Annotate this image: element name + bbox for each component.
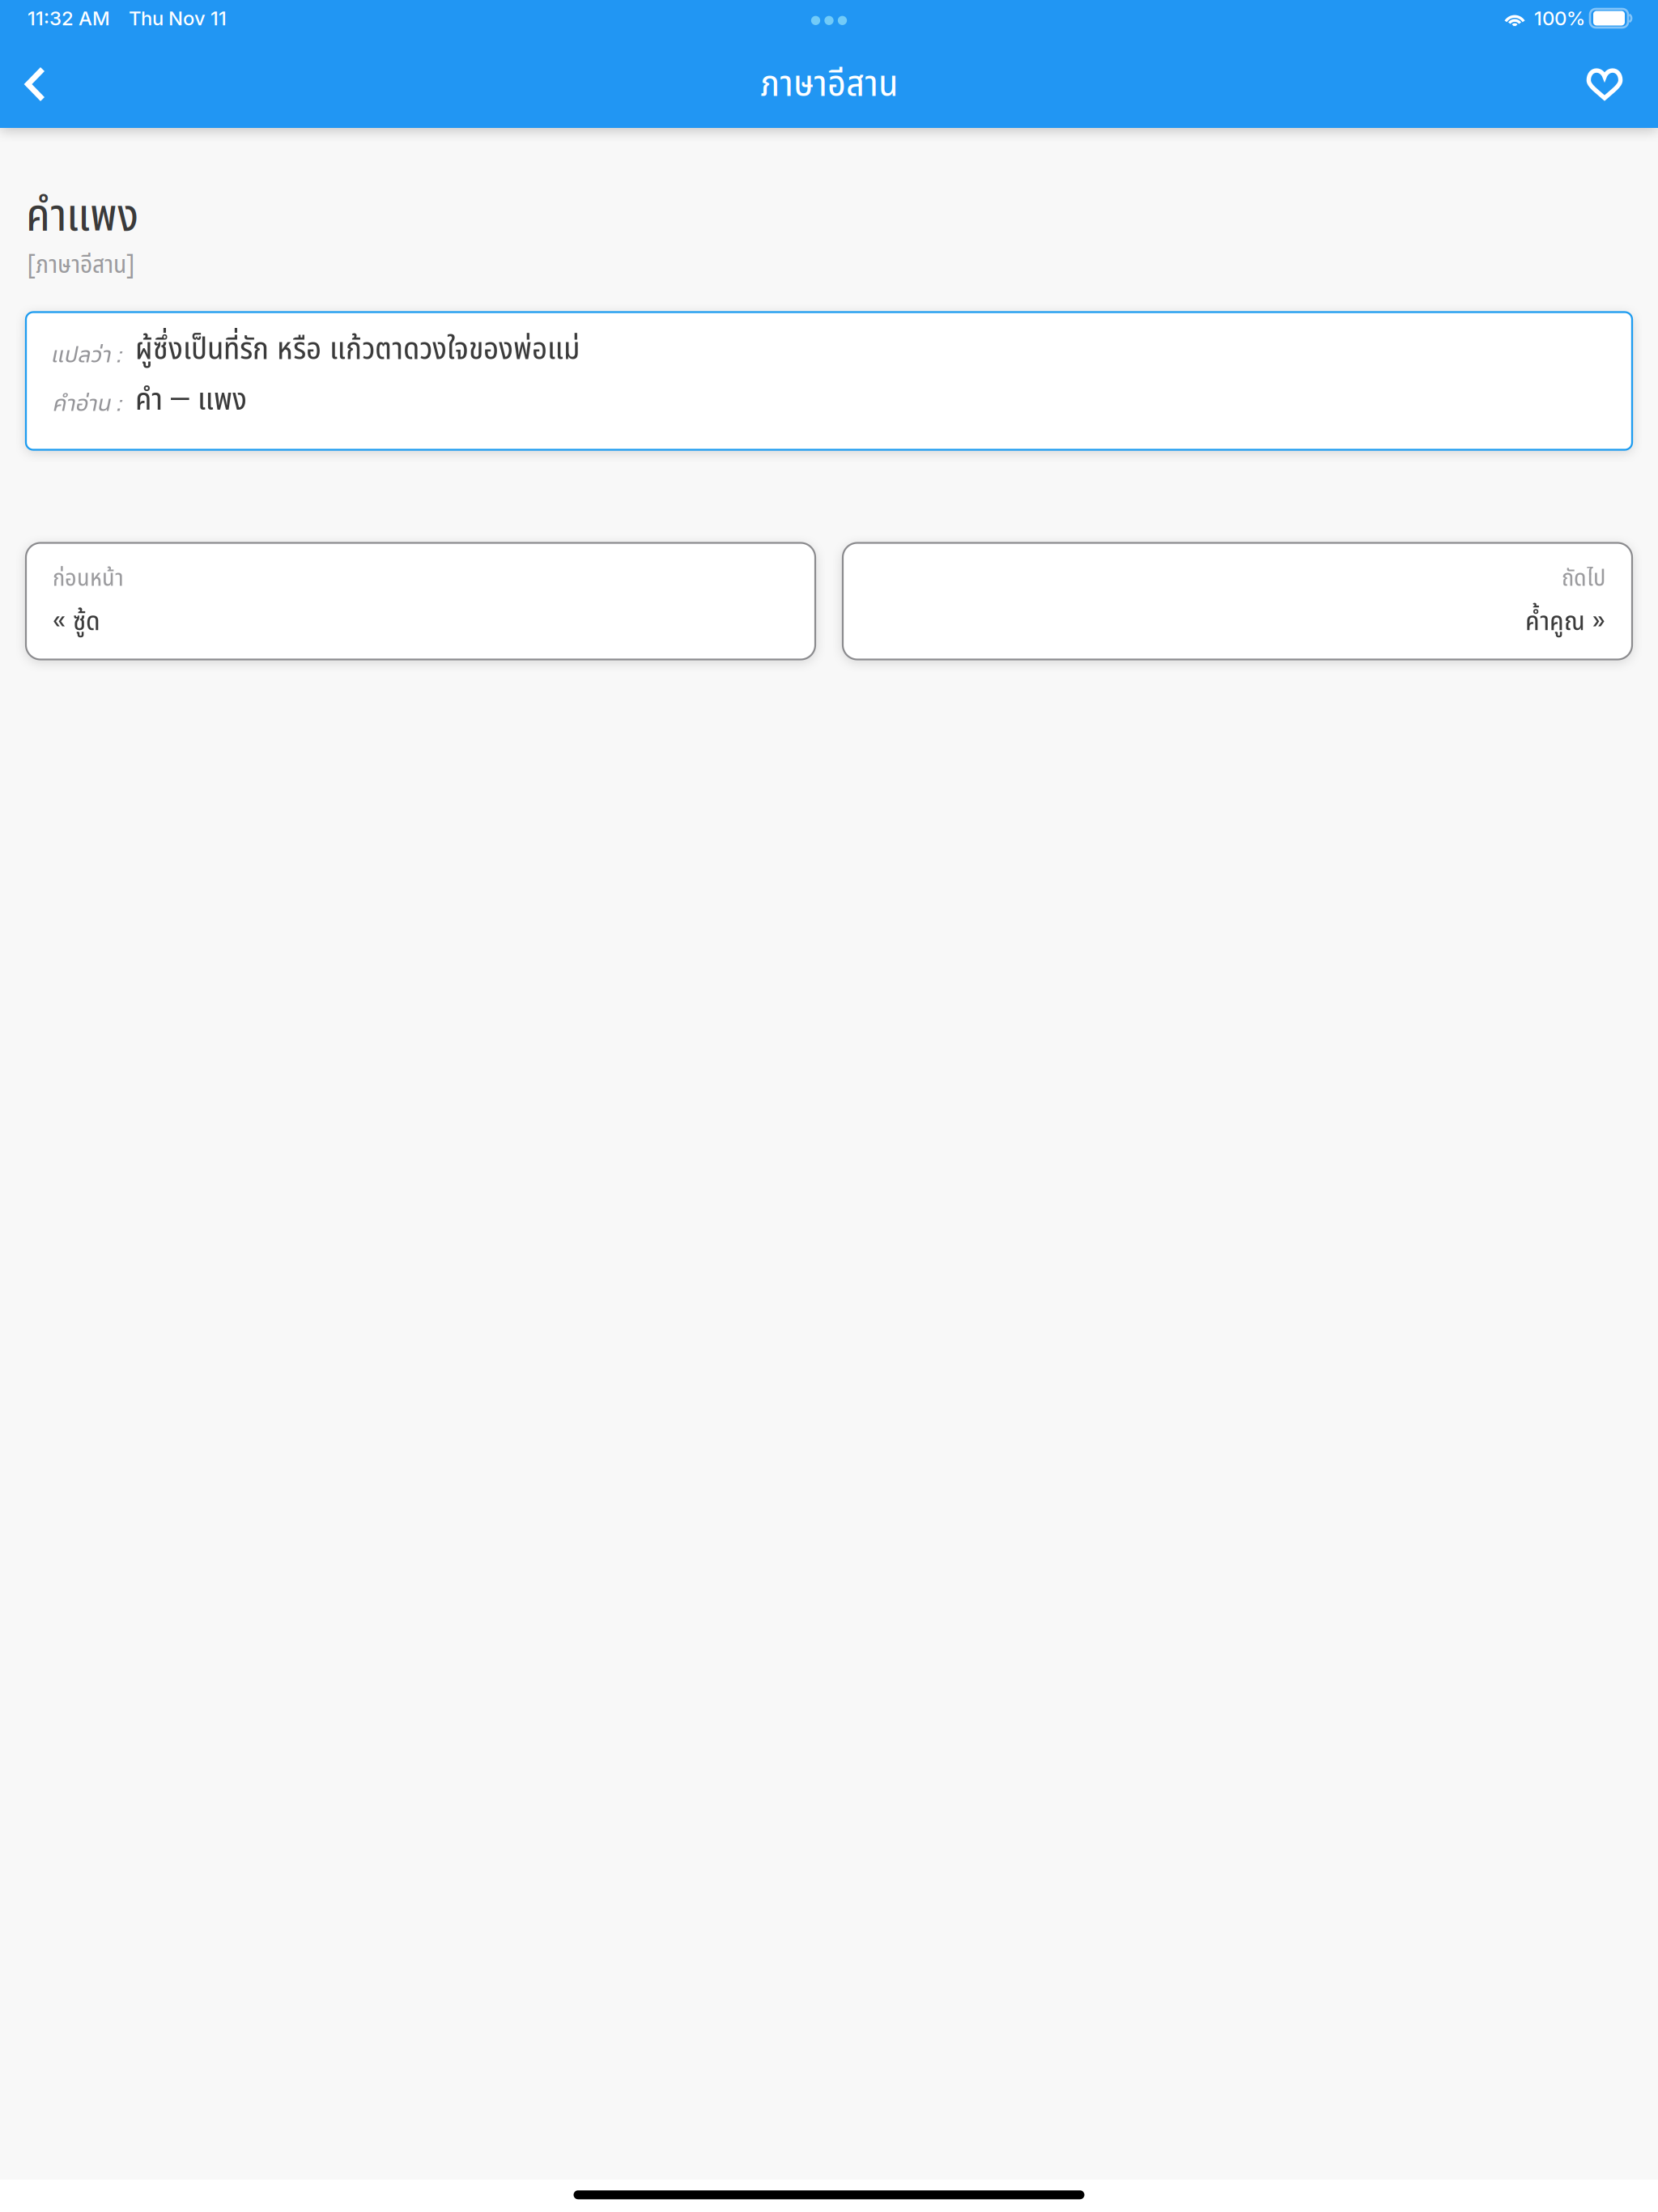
- staticText: ภาษาอีสาน: [760, 54, 898, 107]
- staticText: ก่อนหน้า: [53, 559, 124, 593]
- staticText: คำ – แพง: [135, 374, 247, 420]
- staticText: คำแพง: [26, 179, 138, 244]
- button[interactable]: ก่อนหน้า: [26, 543, 815, 659]
- staticText: แปลว่า :: [50, 338, 122, 370]
- staticText: [ภาษาอีสาน]: [26, 244, 136, 281]
- staticText: « ซู้ด: [53, 599, 100, 639]
- button[interactable]: Add to favourites: [1564, 44, 1645, 125]
- staticText: ผู้ซึ่งเป็นที่รัก หรือ แก้วตาดวงใจของพ่อ…: [135, 325, 580, 369]
- staticText: ถัดไป: [1562, 559, 1605, 593]
- button[interactable]: ถัดไป: [843, 543, 1632, 659]
- staticText: Thu Nov 11: [129, 6, 227, 30]
- staticText: 11:32 AM: [28, 6, 110, 30]
- staticText: ค้ำคูณ »: [1525, 599, 1605, 639]
- staticText: 100%: [1534, 6, 1585, 30]
- button[interactable]: Back: [0, 44, 76, 125]
- staticText: คำอ่าน :: [52, 386, 122, 418]
